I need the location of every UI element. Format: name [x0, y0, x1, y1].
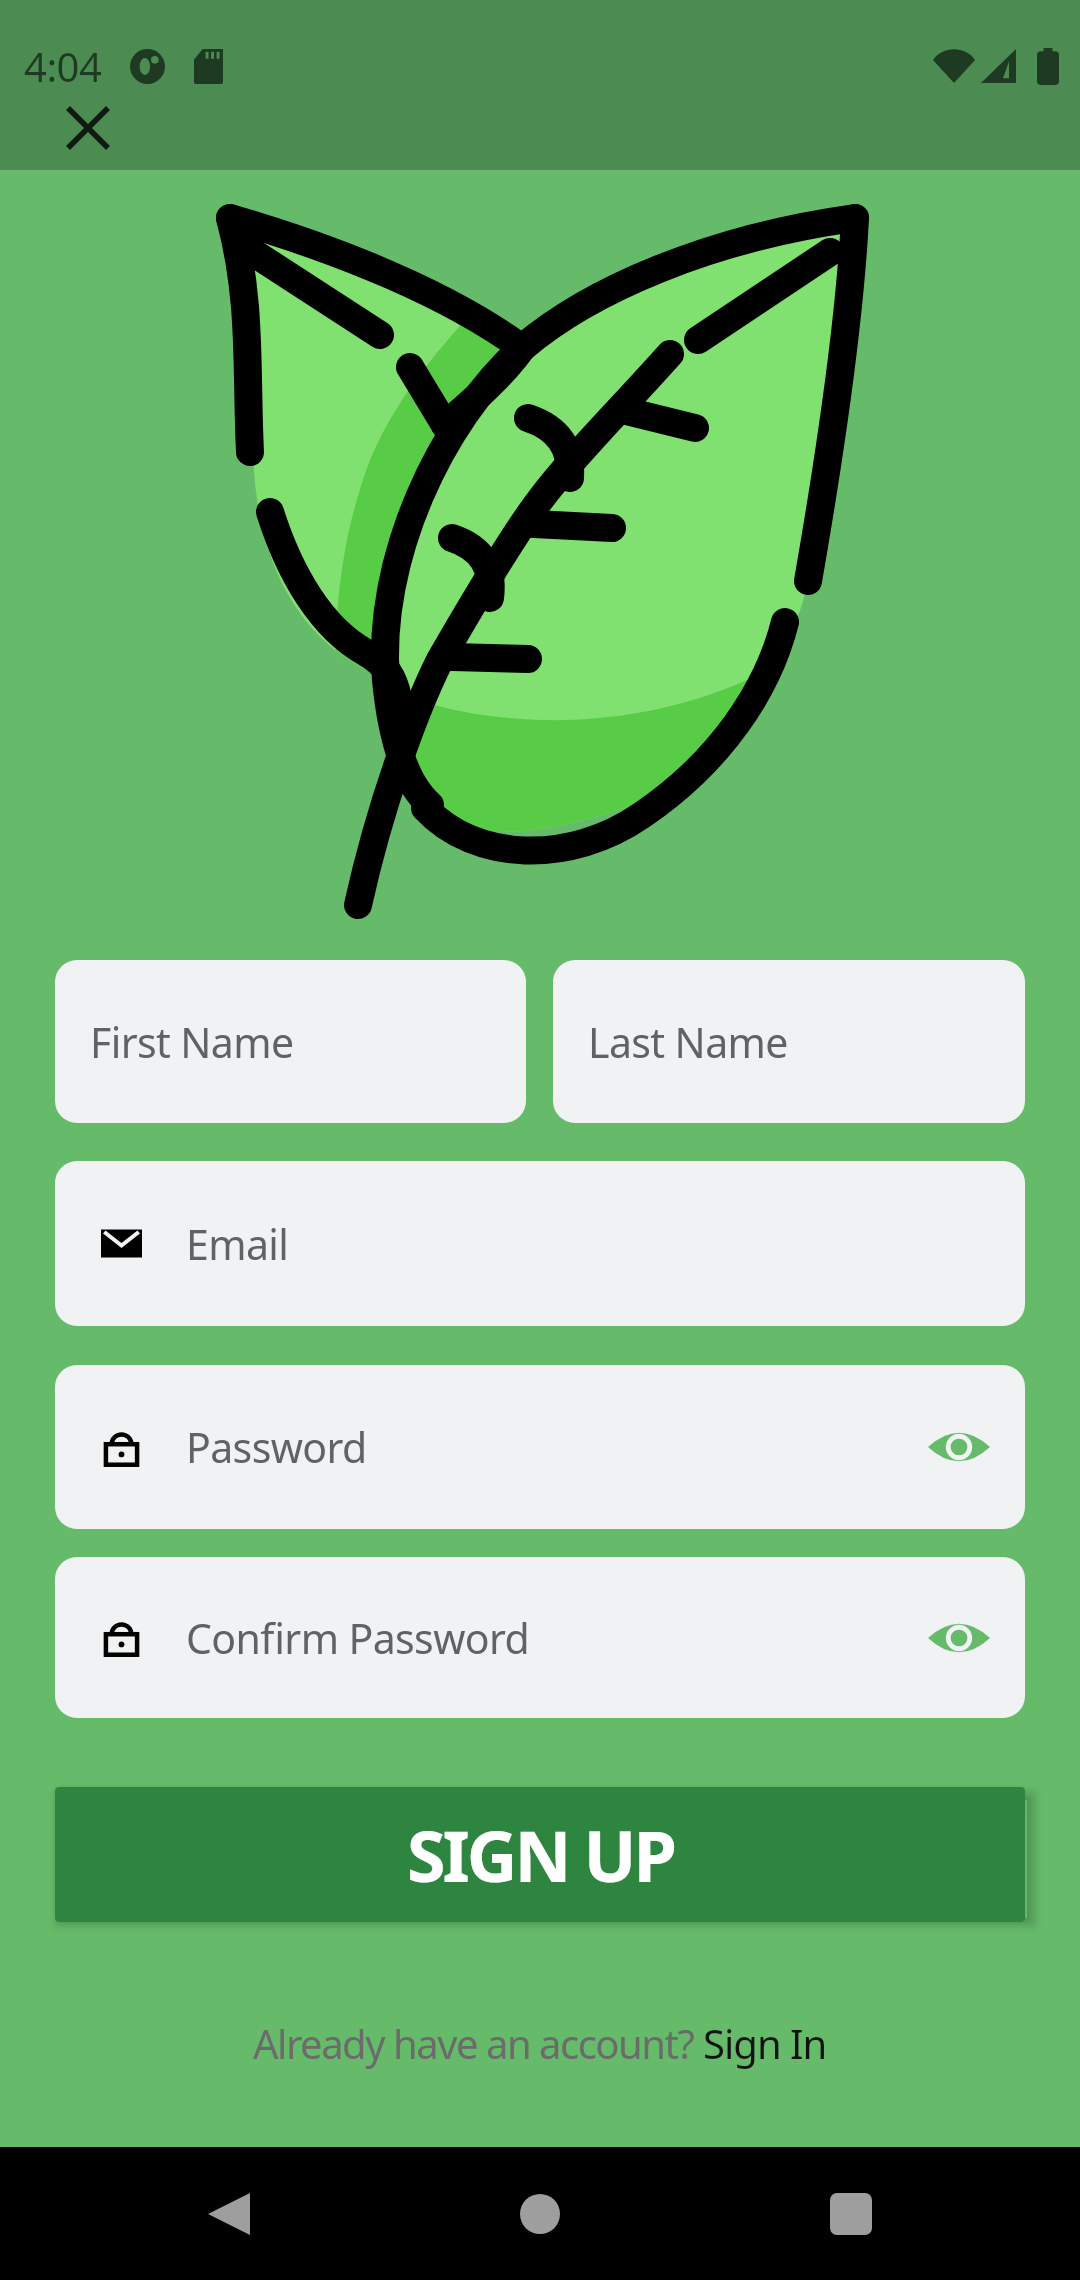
- button[interactable]: Recent apps: [799, 2162, 903, 2266]
- button[interactable]: Home: [488, 2162, 592, 2266]
- button[interactable]: Last Name: [553, 960, 1025, 1123]
- staticText: Password: [186, 1419, 367, 1475]
- button[interactable]: Close: [46, 86, 130, 170]
- button[interactable]: Password: [55, 1365, 1025, 1529]
- staticText: Sign In: [703, 2016, 827, 2070]
- button[interactable]: Email: [55, 1161, 1025, 1326]
- button[interactable]: Show password: [924, 1412, 994, 1482]
- staticText: 4:04: [24, 39, 102, 93]
- button[interactable]: Confirm Password: [55, 1557, 1025, 1718]
- button[interactable]: Already have an account?: [0, 2016, 1080, 2070]
- staticText: SIGN UP: [407, 1807, 674, 1902]
- staticText: First Name: [90, 1014, 294, 1070]
- staticText: Last Name: [588, 1014, 788, 1070]
- button[interactable]: First Name: [55, 960, 526, 1123]
- button[interactable]: SIGN UP: [55, 1787, 1025, 1922]
- button[interactable]: Show password: [924, 1603, 994, 1673]
- staticText: Confirm Password: [186, 1610, 530, 1666]
- staticText: Email: [186, 1216, 289, 1272]
- staticText: Already have an account?: [253, 2016, 703, 2070]
- button[interactable]: Back: [177, 2162, 281, 2266]
